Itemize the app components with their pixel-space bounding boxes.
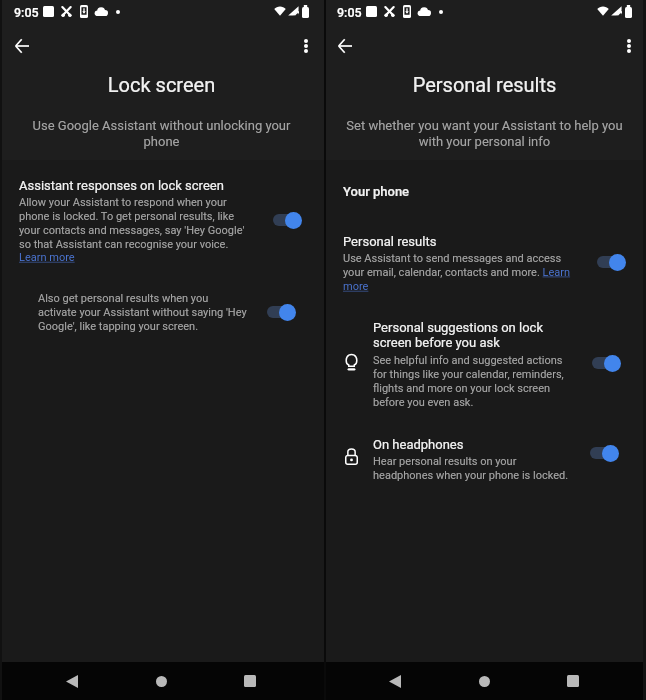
staticText: Personal results — [323, 73, 646, 96]
button[interactable]: More options — [291, 31, 321, 61]
staticText: Set whether you want your Assistant to h… — [340, 118, 629, 149]
button[interactable]: More options — [614, 31, 644, 61]
button[interactable]: Recent apps — [551, 665, 595, 697]
staticText: Assistant responses on lock screen — [19, 178, 224, 193]
button[interactable]: Toggle setting — [587, 352, 621, 374]
button[interactable]: Toggle setting — [585, 442, 619, 464]
staticText: Personal results — [343, 234, 437, 249]
button[interactable]: Home — [462, 665, 506, 697]
button[interactable]: Toggle setting — [592, 251, 626, 273]
staticText: On headphones — [373, 437, 464, 452]
staticText: 9:05 — [14, 5, 39, 20]
staticText: Lock screen — [0, 73, 323, 96]
staticText: Allow your Assistant to respond when you… — [19, 196, 251, 251]
button[interactable]: Back — [373, 665, 417, 697]
button[interactable]: Navigate up — [330, 31, 360, 61]
button[interactable]: Personal suggestions on lock screen befo… — [323, 320, 646, 409]
button[interactable]: On headphones — [323, 437, 646, 482]
button[interactable]: Personal results — [323, 234, 646, 293]
staticText: Use Google Assistant without unlocking y… — [26, 118, 297, 149]
button[interactable]: Assistant responses on lock screen — [0, 178, 323, 264]
button[interactable]: Toggle setting — [262, 301, 296, 323]
button[interactable]: Recent apps — [228, 665, 272, 697]
button[interactable]: Navigate up — [7, 31, 37, 61]
button[interactable]: Toggle setting — [268, 209, 302, 231]
staticText: Personal suggestions on lock screen befo… — [373, 320, 571, 351]
staticText: Learn more — [19, 251, 75, 264]
staticText: Your phone — [343, 184, 410, 199]
staticText: 9:05 — [337, 5, 362, 20]
staticText: Also get personal results when you activ… — [38, 292, 249, 333]
button[interactable]: Back — [50, 665, 94, 697]
button[interactable]: Home — [139, 665, 183, 697]
staticText: Use Assistant to send messages and acces… — [343, 252, 577, 293]
staticText: See helpful info and suggested actions f… — [373, 354, 571, 409]
staticText: Hear personal results on your headphones… — [373, 455, 573, 482]
button[interactable]: Also get personal results when you activ… — [0, 292, 323, 333]
